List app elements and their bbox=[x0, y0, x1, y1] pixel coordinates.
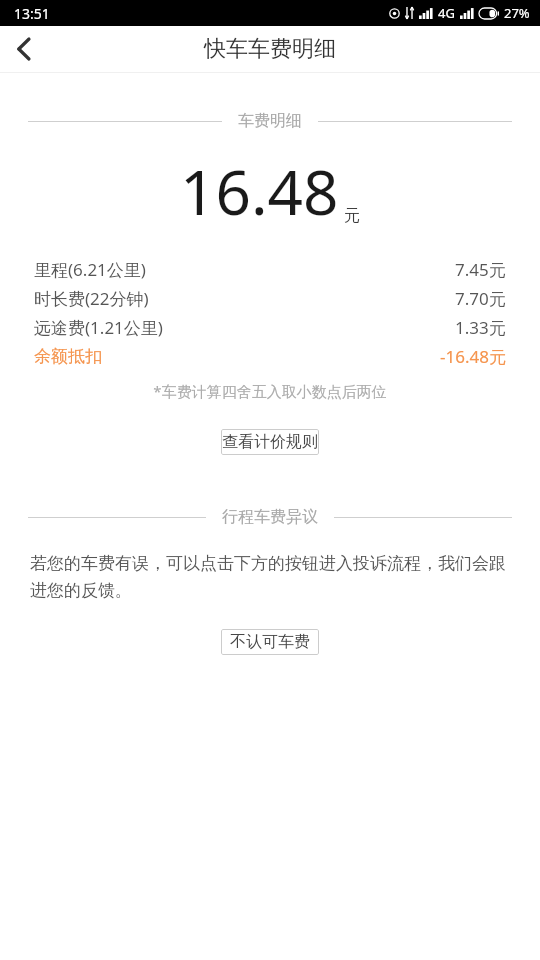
staticText: 13:51 bbox=[14, 4, 50, 23]
staticText: 里程(6.21公里) bbox=[34, 258, 146, 281]
staticText: -16.48元 bbox=[440, 345, 506, 368]
staticText: 7.45元 bbox=[455, 258, 506, 281]
staticText: 若您的车费有误，可以点击下方的按钮进入投诉流程，我们会跟进您的反馈。 bbox=[30, 553, 510, 601]
staticText: 远途费(1.21公里) bbox=[34, 316, 163, 339]
staticText: 行程车费异议 bbox=[222, 507, 318, 527]
staticText: 1.33元 bbox=[455, 316, 506, 339]
staticText: *车费计算四舍五入取小数点后两位 bbox=[0, 381, 540, 401]
staticText: 4G bbox=[438, 4, 455, 22]
staticText: 16.48 bbox=[180, 149, 339, 233]
staticText: 余额抵扣 bbox=[34, 346, 102, 367]
staticText: 7.70元 bbox=[455, 287, 506, 310]
button[interactable]: 查看计价规则 bbox=[221, 429, 319, 455]
staticText: 查看计价规则 bbox=[222, 432, 318, 452]
staticText: 元 bbox=[344, 206, 360, 226]
staticText: 时长费(22分钟) bbox=[34, 287, 149, 310]
button[interactable]: Back bbox=[0, 26, 46, 72]
staticText: 27% bbox=[504, 4, 530, 22]
staticText: 不认可车费 bbox=[230, 632, 310, 652]
staticText: 快车车费明细 bbox=[204, 35, 336, 63]
button[interactable]: 不认可车费 bbox=[221, 629, 319, 655]
staticText: 车费明细 bbox=[238, 111, 302, 131]
